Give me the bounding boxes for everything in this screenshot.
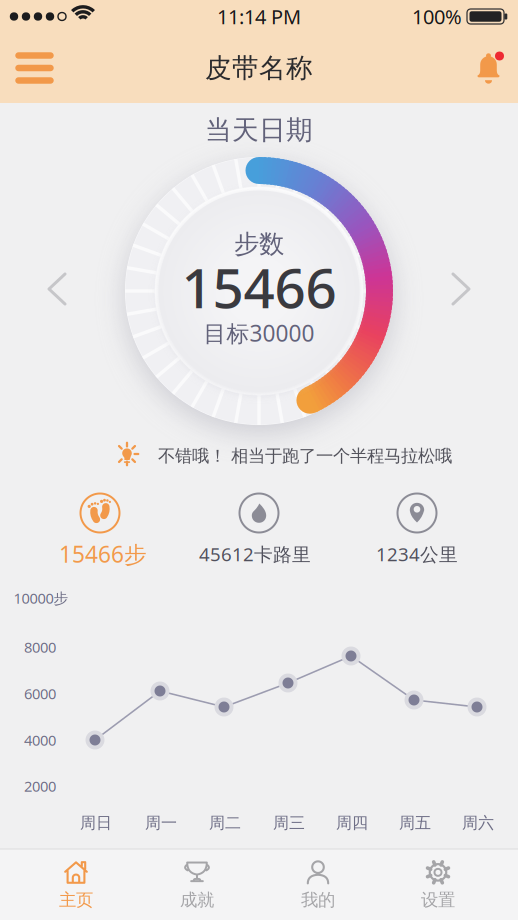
staticText: 6000 [24,684,56,703]
staticText: 周四 [336,813,368,833]
button[interactable]: 我的 [268,852,368,918]
staticText: 周一 [145,813,177,833]
staticText: 100% [412,3,462,30]
button[interactable]: 成就 [147,852,247,918]
staticText: 步数 [234,228,284,259]
staticText: 设置 [421,889,455,911]
staticText: 周日 [80,813,112,833]
staticText: 成就 [180,889,214,911]
staticText: 11:14 PM [217,3,301,30]
staticText: 8000 [24,637,56,657]
button[interactable] [446,269,476,309]
button[interactable]: 主页 [26,852,126,918]
staticText: 我的 [301,889,335,911]
staticText: 当天日期 [205,114,313,146]
staticText: 15466 [181,251,336,323]
staticText: 目标30000 [203,318,314,348]
staticText: 周三 [273,813,305,833]
button[interactable] [42,269,72,309]
staticText: 2000 [24,776,56,796]
staticText: 周五 [399,813,431,833]
staticText: 4000 [24,730,56,750]
staticText: 不错哦！ 相当于跑了一个半程马拉松哦 [158,445,452,467]
staticText: 45612卡路里 [199,542,311,566]
button[interactable]: 设置 [388,852,488,918]
staticText: 主页 [59,889,93,911]
button[interactable] [467,45,511,89]
staticText: 皮带名称 [205,52,313,84]
staticText: 1234公里 [376,542,458,566]
staticText: 10000步 [13,588,68,608]
staticText: 周六 [462,813,494,833]
staticText: 15466步 [59,539,147,569]
button[interactable] [4,43,64,93]
staticText: 周二 [209,813,241,833]
